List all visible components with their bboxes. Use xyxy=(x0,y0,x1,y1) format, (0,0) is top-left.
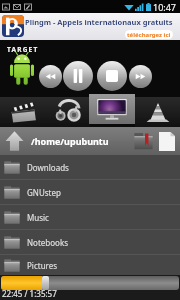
staticText: 10:47 xyxy=(153,1,177,13)
button[interactable]: Plingm - Appels internationaux gratuits xyxy=(0,13,180,40)
staticText: téléchargez ici xyxy=(127,31,171,39)
staticText: GNUstep xyxy=(27,187,61,198)
button[interactable]: Forward xyxy=(129,65,152,88)
button[interactable]: Notebooks xyxy=(0,230,180,254)
button[interactable] xyxy=(1,276,179,290)
button[interactable]: Up one level xyxy=(0,127,28,155)
button[interactable]: GNUstep xyxy=(0,180,180,204)
button[interactable]: Downloads xyxy=(0,155,180,179)
button[interactable]: Rewind xyxy=(39,65,62,88)
staticText: 22:45 / 1:35:57 xyxy=(2,288,57,299)
staticText: /home/upubuntu xyxy=(31,135,109,147)
button[interactable]: Music xyxy=(0,205,180,229)
button[interactable]: Pictures xyxy=(0,255,180,275)
button[interactable]: Audio xyxy=(45,97,90,127)
staticText: Music xyxy=(27,212,49,223)
button[interactable]: Browse xyxy=(89,94,135,124)
staticText: Pictures xyxy=(27,260,58,271)
button[interactable]: téléchargez ici xyxy=(125,30,173,39)
button[interactable]: Stop xyxy=(97,61,127,91)
button[interactable]: New file xyxy=(155,129,179,153)
button[interactable]: Playlist xyxy=(135,97,180,127)
staticText: Plingm - Appels internationaux gratuits xyxy=(25,17,173,27)
staticText: TARGET xyxy=(7,45,39,54)
staticText: Notebooks xyxy=(27,237,69,248)
button[interactable]: Video xyxy=(0,97,45,127)
staticText: Downloads xyxy=(27,162,69,173)
button[interactable]: Pause xyxy=(63,61,93,91)
button[interactable]: Bookmark folder xyxy=(131,129,155,153)
